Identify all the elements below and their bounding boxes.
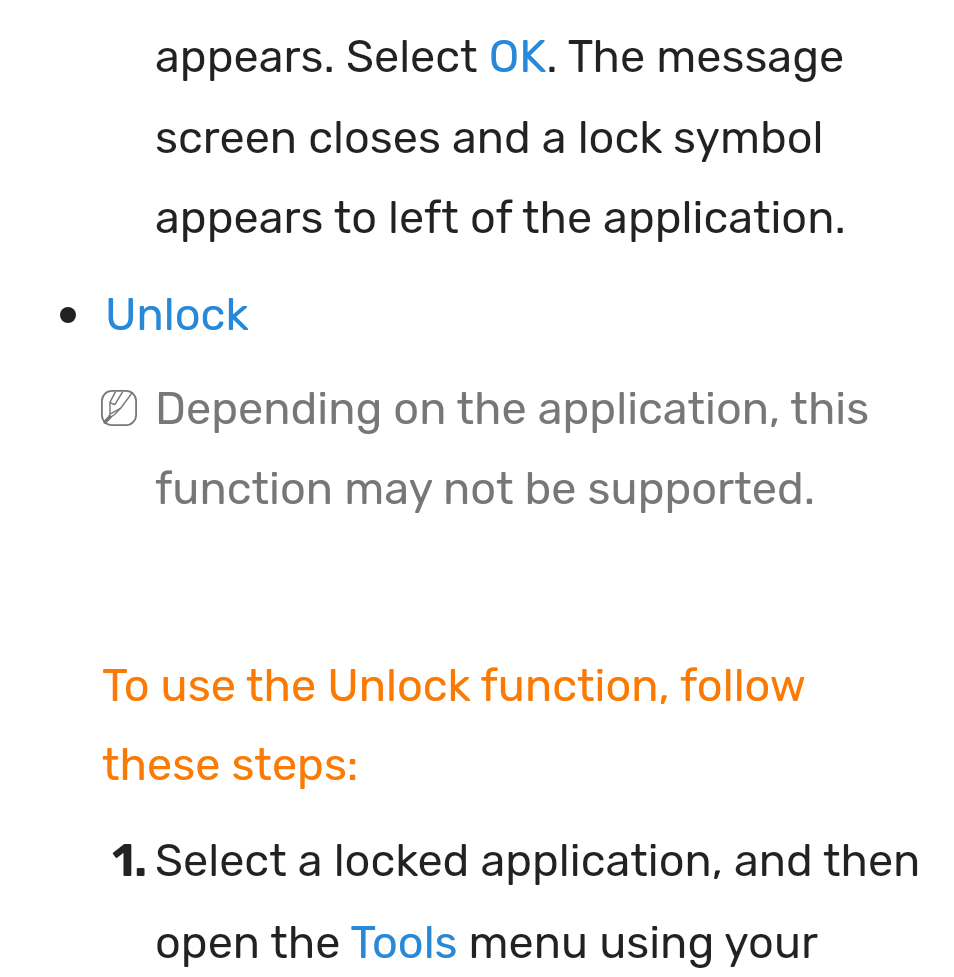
staticText: appears. Select OK. The message: [155, 30, 845, 83]
staticText: appears to left of the application.: [155, 191, 846, 244]
button[interactable]: Unlock: [46, 286, 258, 342]
other: Note: [101, 390, 137, 426]
staticText: function may not be supported.: [155, 462, 816, 515]
staticText: To use the Unlock function, follow: [102, 659, 806, 712]
staticText: these steps:: [102, 738, 359, 791]
staticText: open the Tools menu using your: [155, 916, 819, 969]
staticText: Unlock: [105, 288, 249, 341]
staticText: Select a locked application, and then: [155, 834, 921, 887]
staticText: 1.: [112, 834, 148, 887]
button[interactable]: OK: [484, 33, 546, 78]
staticText: Depending on the application, this: [155, 382, 870, 435]
staticText: screen closes and a lock symbol: [155, 111, 824, 164]
button[interactable]: Tools: [349, 919, 465, 964]
